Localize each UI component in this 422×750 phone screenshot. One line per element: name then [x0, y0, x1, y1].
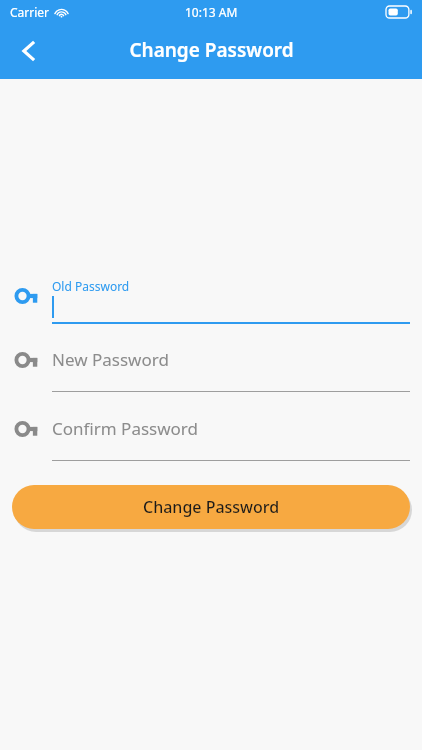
button[interactable]: Change Password — [12, 485, 410, 529]
staticText: Change Password — [129, 37, 294, 63]
staticText: Old Password — [52, 278, 130, 294]
staticText: 10:13 AM — [185, 4, 238, 20]
button[interactable]: Back — [6, 28, 52, 74]
staticText: Confirm Password — [52, 417, 198, 440]
button[interactable]: Old Password — [0, 274, 422, 334]
staticText: New Password — [52, 348, 169, 371]
staticText: Carrier — [10, 4, 50, 20]
button[interactable]: Confirm Password — [0, 410, 422, 470]
staticText: Change Password — [143, 496, 280, 518]
button[interactable]: New Password — [0, 342, 422, 402]
